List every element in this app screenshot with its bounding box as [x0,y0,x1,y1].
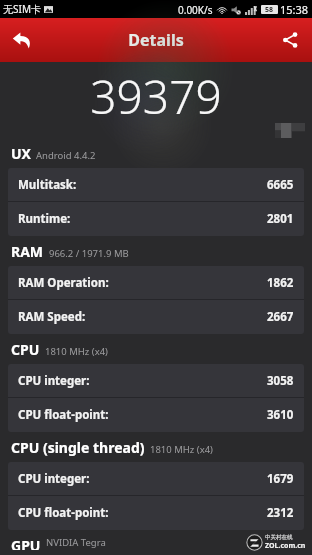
button[interactable]: CPU integer: [8,462,304,496]
staticText: Multitask: [18,177,77,193]
staticText: RAM Operation: [18,275,109,291]
staticText: 1679 [267,471,294,487]
staticText: RAM Speed: [18,309,86,325]
staticText: CPU integer: [18,471,90,487]
staticText: CPU [11,340,40,359]
staticText: 1862 [267,275,294,291]
button[interactable]: RAM Operation: [8,266,304,300]
staticText: 2801 [267,211,294,227]
staticText: ZOL.com.cn [265,541,306,551]
staticText: 2312 [267,505,294,521]
staticText: 39379 [90,65,222,128]
button[interactable]: Back [0,18,44,62]
staticText: 无SIM卡 [3,2,41,16]
staticText: Details [128,29,184,51]
staticText: 3610 [267,407,294,423]
button[interactable]: Share [268,18,312,62]
staticText: CPU (single thread) [11,438,145,457]
staticText: 1810 MHz (x4) [150,443,213,456]
staticText: Android 4.4.2 [36,149,96,162]
staticText: CPU float-point: [18,505,109,521]
staticText: 3058 [267,373,294,389]
staticText: GPU [11,536,41,550]
staticText: 15:38 [280,2,309,17]
button[interactable]: CPU float-point: [8,398,304,432]
staticText: RAM [11,242,44,261]
button[interactable]: Multitask: [8,168,304,202]
button[interactable]: CPU float-point: [8,496,304,530]
staticText: 6665 [267,177,294,193]
staticText: 中关村在线 [265,534,293,541]
staticText: 966.2 / 1971.9 MB [49,247,129,260]
button[interactable]: RAM Speed: [8,300,304,334]
staticText: 1810 MHz (x4) [45,345,108,358]
staticText: 2667 [267,309,294,325]
staticText: UX [11,144,31,163]
staticText: CPU float-point: [18,407,109,423]
staticText: 58 [265,5,274,14]
staticText: NVIDIA Tegra [46,536,106,549]
button[interactable]: CPU integer: [8,364,304,398]
staticText: 0.00K/s [178,3,213,17]
staticText: CPU integer: [18,373,90,389]
staticText: Runtime: [18,211,71,227]
button[interactable]: Runtime: [8,202,304,236]
